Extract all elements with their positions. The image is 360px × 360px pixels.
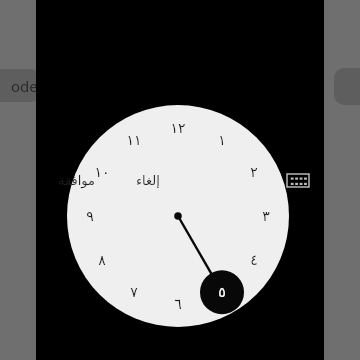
staticText: ٦ — [174, 296, 182, 312]
button[interactable]: ٨ — [87, 245, 117, 275]
button[interactable]: ode — [0, 69, 40, 102]
button[interactable]: ٢ — [239, 157, 269, 187]
staticText: ode — [11, 76, 38, 96]
staticText: ٣ — [262, 208, 270, 224]
button[interactable]: إلغاء — [128, 169, 168, 192]
button[interactable]: ١ — [67, 105, 289, 327]
button[interactable]: ١٠ — [87, 157, 117, 187]
staticText: ١ — [218, 132, 226, 148]
staticText: إلغاء — [136, 173, 160, 188]
button[interactable]: Switch to keyboard input — [286, 171, 310, 189]
staticText: ٤ — [250, 252, 258, 268]
button[interactable]: ٤ — [239, 245, 269, 275]
staticText: ٨ — [98, 252, 106, 268]
button[interactable]: ٣ — [251, 201, 281, 231]
staticText: موافقة — [58, 173, 96, 188]
staticText: ١٢ — [170, 120, 186, 136]
staticText: : — [155, 145, 167, 205]
button[interactable]: ١ — [207, 125, 237, 155]
button[interactable]: ٩ — [75, 201, 105, 231]
staticText: ٧ — [130, 284, 138, 300]
staticText: ٩ — [86, 208, 94, 224]
button[interactable]: ٦ — [163, 289, 193, 319]
button[interactable] — [334, 68, 360, 105]
button[interactable]: ١٢ — [163, 113, 193, 143]
staticText: ٢ — [250, 164, 258, 180]
staticText: ١٠ — [94, 164, 110, 180]
staticText: ٥ — [218, 284, 226, 300]
staticText: ١١ — [126, 132, 142, 148]
button[interactable]: ٧ — [119, 277, 149, 307]
button[interactable]: موافقة — [50, 169, 104, 192]
button[interactable]: ١١ — [119, 125, 149, 155]
staticText: ٥ — [127, 150, 153, 205]
button[interactable]: ٥ — [207, 277, 237, 307]
button[interactable]: ٥ — [125, 150, 155, 205]
